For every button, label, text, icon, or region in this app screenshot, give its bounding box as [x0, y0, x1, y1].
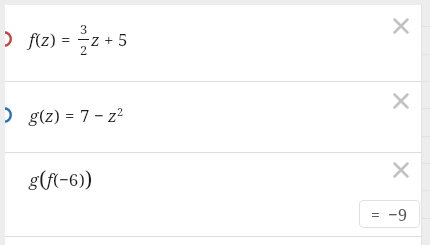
staticText: z: [91, 28, 100, 51]
staticText: −6: [59, 168, 79, 191]
staticText: −: [94, 104, 104, 127]
staticText: ): [79, 168, 85, 191]
staticText: g: [29, 168, 39, 191]
button[interactable]: Toggle curve visibility: [5, 82, 421, 152]
staticText: (: [53, 168, 59, 191]
staticText: =: [65, 104, 75, 127]
button[interactable]: Delete expression: [386, 155, 416, 185]
staticText: 7: [80, 104, 90, 127]
staticText: =: [61, 28, 71, 51]
button[interactable]: Toggle curve visibility: [0, 107, 12, 123]
staticText: z: [108, 104, 117, 127]
staticText: =: [371, 204, 380, 226]
staticText: ): [54, 104, 60, 127]
staticText: z: [41, 28, 50, 51]
staticText: 2: [117, 104, 124, 119]
staticText: (: [39, 104, 45, 127]
button[interactable]: Toggle curve visibility: [0, 31, 12, 47]
staticText: ): [85, 165, 93, 194]
button[interactable]: Delete expression: [386, 11, 416, 41]
button[interactable]: Delete expression: [386, 86, 416, 116]
button[interactable]: =: [359, 200, 420, 228]
staticText: 5: [118, 28, 128, 51]
staticText: 3: [80, 20, 88, 38]
staticText: f: [47, 168, 53, 191]
staticText: +: [104, 28, 114, 51]
staticText: z: [45, 104, 54, 127]
staticText: 2: [80, 41, 88, 59]
staticText: f: [29, 28, 35, 51]
button[interactable]: g: [5, 153, 421, 236]
staticText: (: [35, 28, 41, 51]
staticText: −9: [388, 203, 408, 226]
staticText: (: [39, 165, 47, 194]
button[interactable]: Toggle curve visibility: [5, 5, 421, 81]
staticText: ): [50, 28, 56, 51]
staticText: g: [29, 104, 39, 127]
